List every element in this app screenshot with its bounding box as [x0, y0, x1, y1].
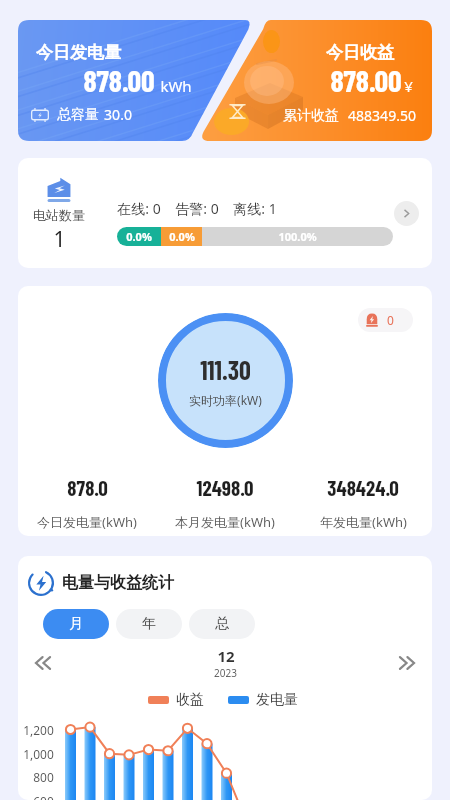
staticText: 累计收益: [283, 107, 339, 125]
staticText: 0.0%: [169, 229, 195, 244]
staticText: 今日发电量(kWh): [37, 513, 137, 531]
staticText: 在线: 0: [117, 199, 161, 218]
staticText: 100.0%: [278, 229, 317, 244]
staticText: 总: [215, 615, 229, 633]
staticText: 1,000: [23, 746, 54, 762]
staticText: 总容量: [57, 106, 99, 124]
button[interactable]: 下一月: [389, 645, 425, 681]
staticText: 0.0%: [126, 229, 152, 244]
staticText: 878.00: [330, 62, 402, 98]
staticText: 电量与收益统计: [62, 573, 174, 593]
staticText: 今日发电量: [36, 42, 121, 63]
staticText: 电站数量: [33, 207, 85, 223]
button[interactable]: 年: [116, 609, 182, 639]
staticText: 1: [53, 225, 66, 254]
staticText: 600: [33, 793, 54, 800]
staticText: 本月发电量(kWh): [175, 513, 275, 531]
staticText: kWh: [160, 76, 192, 96]
staticText: 月: [69, 615, 83, 633]
staticText: 年发电量(kWh): [320, 513, 407, 531]
staticText: 0: [387, 312, 394, 328]
staticText: 今日收益: [326, 42, 394, 63]
staticText: 800: [33, 769, 54, 785]
staticText: 12: [217, 646, 235, 666]
button[interactable]: 电站数量: [18, 158, 432, 268]
staticText: 告警: 0: [175, 199, 219, 218]
staticText: 收益: [176, 691, 204, 709]
staticText: 1,200: [23, 722, 54, 738]
staticText: ¥: [404, 76, 413, 96]
staticText: 实时功率(kW): [189, 392, 262, 408]
button[interactable]: 查看电站列表: [394, 201, 419, 226]
staticText: 111.30: [200, 354, 251, 385]
button[interactable]: 告警数量: [358, 308, 413, 332]
staticText: 878.00: [83, 62, 155, 98]
staticText: 年: [142, 615, 156, 633]
staticText: 发电量: [256, 691, 298, 709]
staticText: 30.0: [104, 105, 132, 124]
button[interactable]: 月: [43, 609, 109, 639]
staticText: 离线: 1: [233, 199, 277, 218]
button[interactable]: 今日收益: [18, 20, 432, 141]
button[interactable]: 上一月: [25, 645, 61, 681]
staticText: 12498.0: [196, 475, 254, 500]
staticText: 878.0: [67, 475, 108, 500]
button[interactable]: 总: [189, 609, 255, 639]
staticText: 348424.0: [327, 475, 399, 500]
staticText: 488349.50: [348, 106, 416, 125]
staticText: 2023: [214, 666, 237, 680]
